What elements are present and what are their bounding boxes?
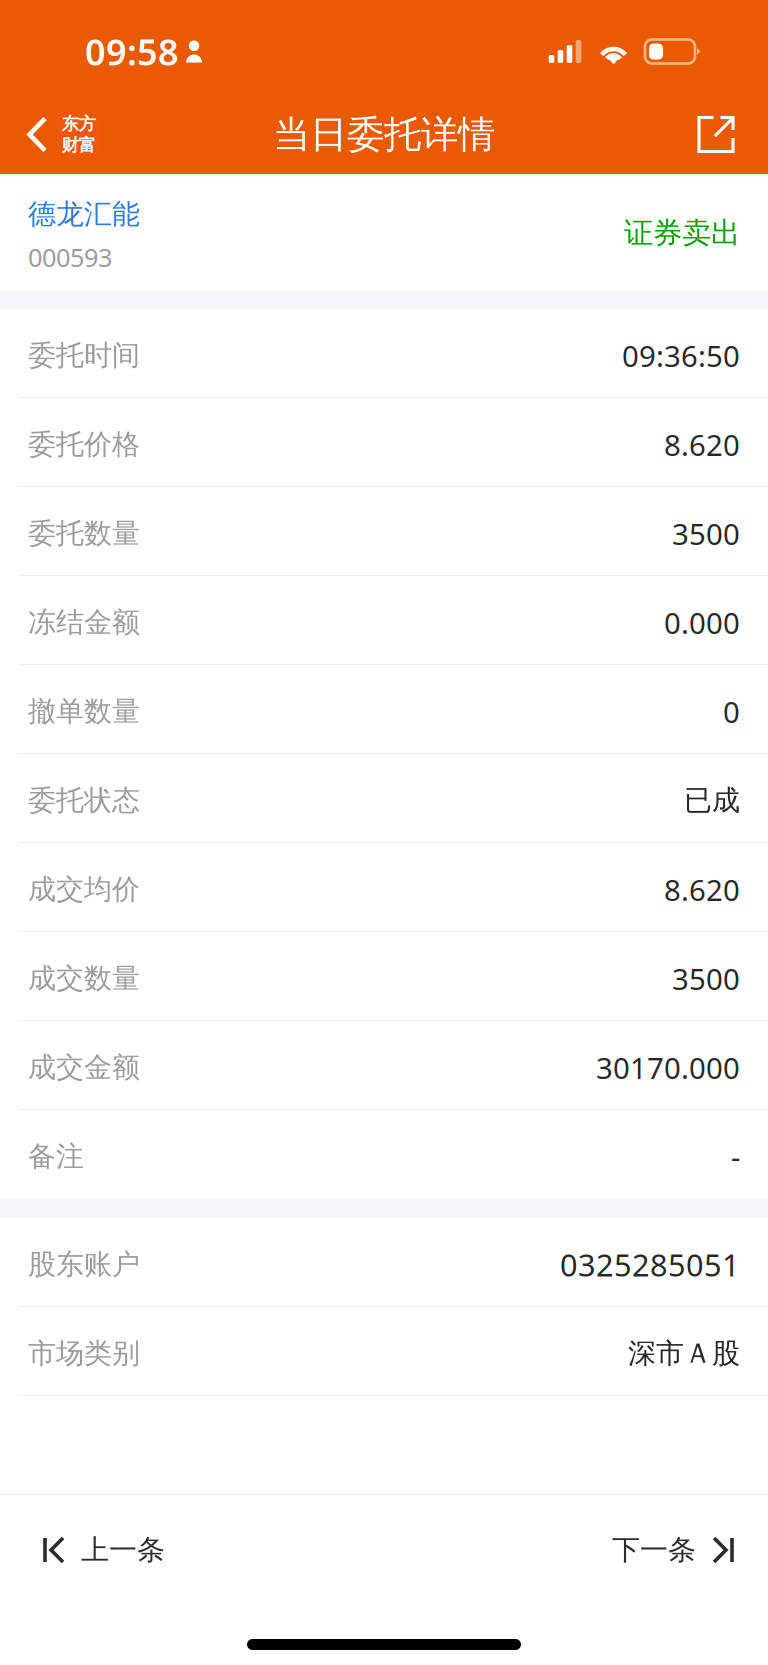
button[interactable]: 返回东方财富 [0,95,114,174]
staticText: 委托价格 [28,427,140,462]
button[interactable]: 下一条 [582,1495,768,1605]
button[interactable]: 德龙汇能 [0,174,768,291]
staticText: 09:58 [85,28,179,75]
staticText: 备注 [28,1139,84,1174]
staticText: 已成 [684,783,740,818]
staticText: 冻结金额 [28,605,140,640]
staticText: 市场类别 [28,1336,140,1371]
staticText: 东方 [61,113,95,134]
staticText: 0.000 [664,603,740,642]
staticText: 委托数量 [28,516,140,551]
staticText: 当日委托详情 [273,112,495,157]
staticText: 撤单数量 [28,694,140,729]
staticText: 委托状态 [28,783,140,818]
staticText: 上一条 [81,1533,165,1567]
staticText: 30170.000 [596,1048,740,1087]
staticText: 3500 [672,514,740,553]
button[interactable]: 分享 [681,95,768,174]
staticText: 证券卖出 [624,215,740,251]
staticText: 委托时间 [28,338,140,373]
staticText: 德龙汇能 [28,197,140,231]
staticText: 财富 [61,134,95,156]
staticText: 8.620 [664,425,740,464]
staticText: 成交数量 [28,961,140,996]
staticText: 0 [723,692,740,731]
staticText: 下一条 [612,1533,696,1567]
staticText: 成交金额 [28,1050,140,1085]
button[interactable]: 上一条 [0,1495,195,1605]
staticText: 3500 [672,959,740,998]
staticText: - [731,1137,740,1176]
staticText: 0325285051 [560,1244,740,1285]
staticText: 股东账户 [28,1247,140,1282]
staticText: 深市Ａ股 [628,1336,740,1371]
staticText: 000593 [28,240,112,274]
staticText: 09:36:50 [622,336,740,375]
staticText: 8.620 [664,870,740,909]
staticText: 成交均价 [28,872,140,907]
